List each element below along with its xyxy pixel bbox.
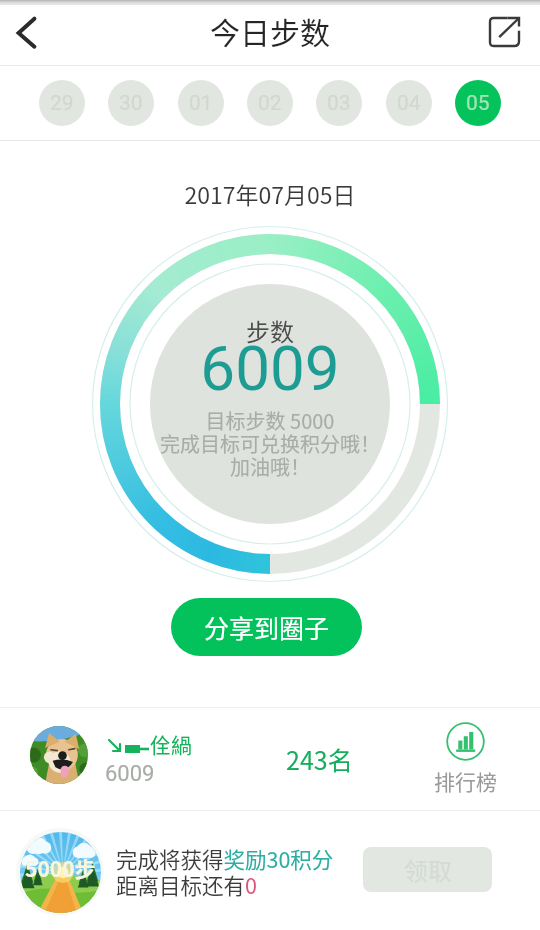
staticText: 30 <box>119 91 143 116</box>
staticText: 领取 <box>404 852 452 887</box>
button[interactable]: 01 <box>178 80 224 126</box>
staticText: 243名 <box>286 741 353 777</box>
staticText: 05 <box>466 91 490 116</box>
staticText: 2017年07月05日 <box>0 177 540 210</box>
staticText: 步数 <box>86 313 454 348</box>
staticText: 佺緺 <box>150 729 192 759</box>
button[interactable]: 04 <box>386 80 432 126</box>
button[interactable]: 佺緺 <box>0 708 540 810</box>
button[interactable]: 05 <box>455 80 501 126</box>
button[interactable]: Share <box>489 17 520 47</box>
button[interactable]: 排行榜 <box>430 722 500 796</box>
staticText: 5000步 <box>25 853 96 883</box>
button[interactable]: 30 <box>108 80 154 126</box>
staticText: 02 <box>258 91 282 116</box>
staticText: 完成将获得奖励30积分 <box>116 843 334 874</box>
staticText: 01 <box>189 91 213 116</box>
button[interactable]: 02 <box>247 80 293 126</box>
staticText: 分享到圈子 <box>204 609 330 645</box>
staticText: 29 <box>50 91 74 116</box>
staticText: 04 <box>397 91 421 116</box>
staticText: 6009 <box>105 761 155 787</box>
staticText: 今日步数 <box>210 9 330 52</box>
staticText: 03 <box>327 91 351 116</box>
staticText: 距离目标还有0 <box>116 869 257 900</box>
staticText: 6009 <box>86 332 454 405</box>
button[interactable]: 03 <box>316 80 362 126</box>
button[interactable]: 领取 <box>363 847 492 892</box>
button[interactable]: Back <box>2 10 52 60</box>
button[interactable]: 29 <box>39 80 85 126</box>
staticText: 目标步数 5000 完成目标可兑换积分哦！ 加油哦！ <box>86 406 454 481</box>
button[interactable]: 分享到圈子 <box>171 598 362 656</box>
staticText: 排行榜 <box>434 766 497 796</box>
